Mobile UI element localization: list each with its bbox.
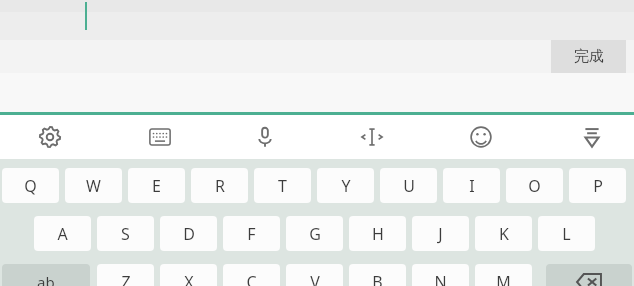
button[interactable]: Q <box>2 168 59 203</box>
staticText: B <box>372 271 383 286</box>
staticText: L <box>562 223 571 245</box>
staticText: E <box>152 175 161 197</box>
button[interactable]: P <box>569 168 626 203</box>
staticText: U <box>403 175 415 197</box>
button[interactable]: Y <box>317 168 374 203</box>
button[interactable]: Emoji <box>460 120 502 154</box>
staticText: V <box>310 271 320 286</box>
staticText: R <box>215 175 225 197</box>
button[interactable]: R <box>191 168 248 203</box>
staticText: N <box>434 271 447 286</box>
button[interactable]: K <box>475 216 532 251</box>
button[interactable]: I <box>443 168 500 203</box>
staticText: H <box>372 223 384 245</box>
button[interactable]: J <box>412 216 469 251</box>
button[interactable]: ab <box>2 264 90 286</box>
staticText: I <box>469 175 475 197</box>
button[interactable]: E <box>128 168 185 203</box>
staticText: Y <box>341 175 351 197</box>
staticText: G <box>309 223 321 245</box>
staticText: K <box>499 223 509 245</box>
staticText: A <box>57 223 68 245</box>
staticText: W <box>86 175 101 197</box>
staticText: J <box>438 223 443 245</box>
staticText: Z <box>121 271 131 286</box>
staticText: 完成 <box>574 47 604 66</box>
button[interactable]: L <box>538 216 595 251</box>
staticText: M <box>496 271 511 286</box>
button[interactable]: S <box>97 216 154 251</box>
button[interactable]: Hide keyboard <box>571 120 613 154</box>
staticText: C <box>246 271 257 286</box>
button[interactable]: N <box>412 264 469 286</box>
button[interactable]: H <box>349 216 406 251</box>
staticText: S <box>121 223 130 245</box>
button[interactable]: X <box>160 264 217 286</box>
button[interactable]: G <box>286 216 343 251</box>
button[interactable]: Move cursor <box>351 120 393 154</box>
staticText: P <box>593 175 603 197</box>
staticText: D <box>183 223 195 245</box>
button[interactable]: Backspace <box>546 264 632 286</box>
button[interactable]: T <box>254 168 311 203</box>
button[interactable]: A <box>34 216 91 251</box>
button[interactable]: V <box>286 264 343 286</box>
button[interactable]: Settings <box>29 120 71 154</box>
button[interactable]: 完成 <box>551 40 626 73</box>
button[interactable]: Z <box>97 264 154 286</box>
button[interactable]: W <box>65 168 122 203</box>
button[interactable]: Voice input <box>244 120 286 154</box>
button[interactable]: M <box>475 264 532 286</box>
button[interactable]: Keyboard layout <box>139 120 181 154</box>
staticText: X <box>184 271 194 286</box>
staticText: O <box>528 175 541 197</box>
staticText: Q <box>24 175 37 197</box>
button[interactable]: D <box>160 216 217 251</box>
staticText: T <box>278 175 287 197</box>
staticText: ab <box>37 272 55 286</box>
button[interactable]: F <box>223 216 280 251</box>
button[interactable]: B <box>349 264 406 286</box>
button[interactable]: C <box>223 264 280 286</box>
button[interactable]: U <box>380 168 437 203</box>
staticText: F <box>247 223 256 245</box>
button[interactable]: O <box>506 168 563 203</box>
